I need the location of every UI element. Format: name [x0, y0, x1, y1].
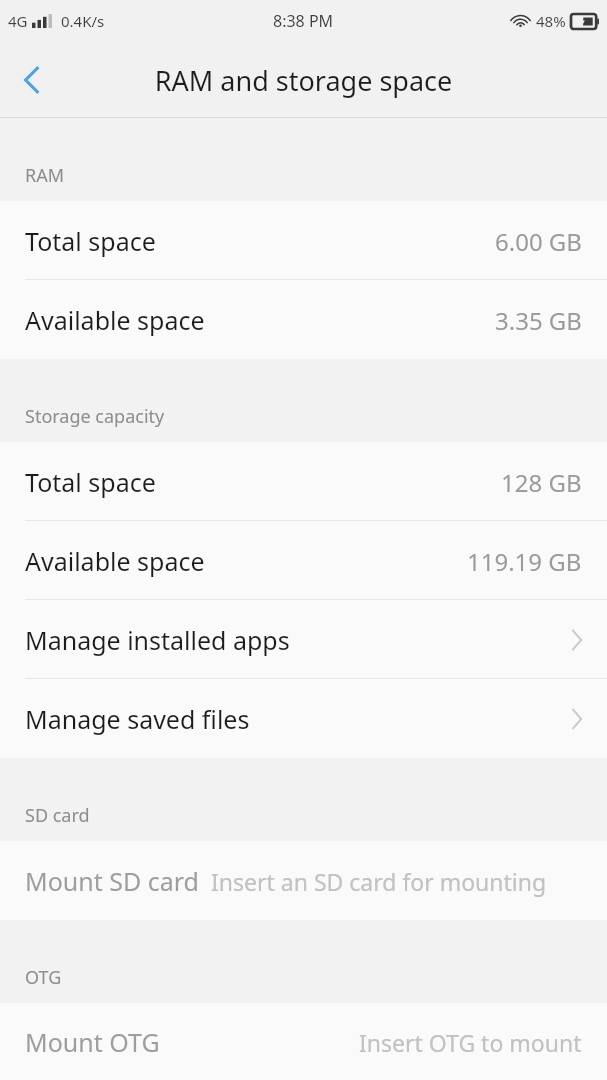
staticText: RAM and storage space [0, 62, 607, 99]
staticText: 48% [536, 11, 566, 31]
staticText: 119.19 GB [467, 545, 582, 578]
staticText: Total space [25, 465, 156, 499]
staticText: 128 GB [501, 466, 582, 499]
staticText: Total space [25, 224, 156, 258]
staticText: Storage capacity [25, 404, 165, 429]
button[interactable]: Back [0, 48, 64, 112]
staticText: Mount SD card [25, 864, 199, 898]
staticText: 0.4K/s [61, 11, 105, 31]
staticText: 8:38 PM [273, 10, 334, 32]
staticText: Available space [25, 303, 205, 337]
button[interactable]: Manage saved files [0, 679, 607, 758]
staticText: Mount OTG [25, 1025, 160, 1059]
staticText: SD card [25, 803, 90, 828]
button[interactable]: Mount SD card [0, 841, 607, 920]
staticText: Available space [25, 544, 205, 578]
button[interactable]: Available space [0, 280, 607, 359]
staticText: Insert OTG to mount [359, 1027, 582, 1058]
staticText: Manage installed apps [25, 623, 290, 657]
button[interactable]: Manage installed apps [0, 600, 607, 679]
staticText: OTG [25, 965, 62, 990]
staticText: 3.35 GB [495, 304, 582, 337]
staticText: Insert an SD card for mounting [211, 866, 547, 897]
staticText: Manage saved files [25, 702, 250, 736]
button[interactable]: Available space [0, 521, 607, 600]
button[interactable]: Total space [0, 442, 607, 521]
button[interactable]: Total space [0, 201, 607, 280]
button[interactable]: Mount OTG [0, 1003, 607, 1080]
staticText: RAM [25, 163, 65, 188]
staticText: 4G [8, 11, 28, 31]
staticText: 6.00 GB [495, 225, 582, 258]
